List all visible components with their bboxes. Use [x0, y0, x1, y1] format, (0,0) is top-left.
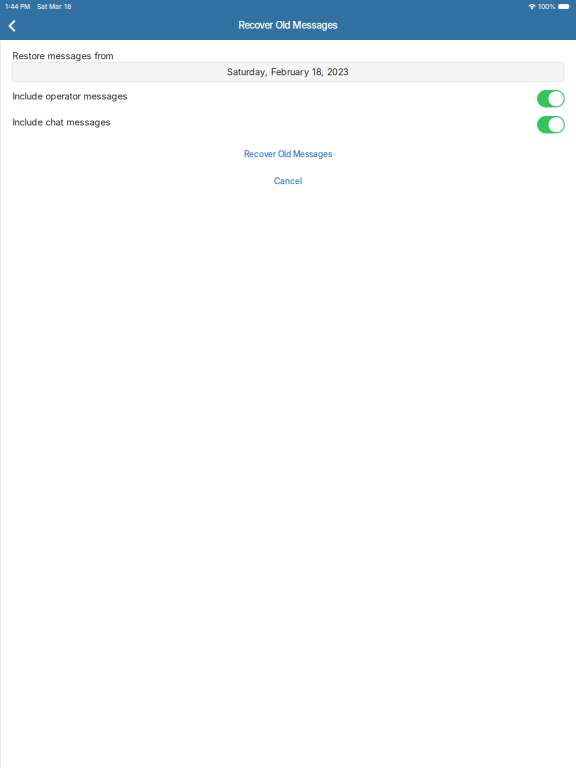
button[interactable]: Cancel — [270, 173, 306, 189]
button[interactable]: Back — [3, 14, 21, 38]
button[interactable]: Recover Old Messages — [240, 146, 336, 162]
staticText: Restore messages from — [13, 50, 114, 61]
staticText: 1:44 PM — [5, 2, 30, 11]
staticText: Recover Old Messages — [244, 149, 332, 159]
button[interactable]: Include chat messages — [0, 112, 576, 133]
staticText: Recover Old Messages — [238, 19, 337, 31]
staticText: Saturday, February 18, 2023 — [227, 67, 349, 78]
button[interactable]: Include operator messages — [0, 86, 576, 107]
staticText: Cancel — [274, 176, 302, 186]
staticText: Include operator messages — [13, 91, 128, 102]
staticText: Include chat messages — [13, 117, 111, 128]
button[interactable]: Saturday, February 18, 2023 — [12, 62, 564, 82]
staticText: 100% — [538, 2, 556, 11]
staticText: Sat Mar 18 — [37, 2, 71, 11]
